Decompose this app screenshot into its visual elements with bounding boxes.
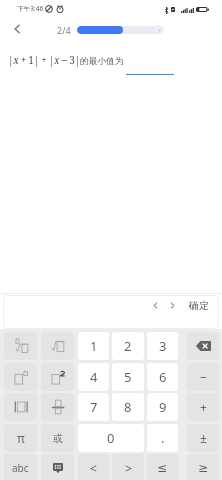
button[interactable] bbox=[41, 393, 74, 421]
button[interactable]: + bbox=[187, 393, 219, 421]
button[interactable]: − bbox=[187, 363, 219, 391]
button[interactable]: 0 bbox=[78, 424, 144, 452]
staticText: 3 bbox=[159, 337, 167, 355]
button[interactable]: Back bbox=[5, 17, 29, 41]
staticText: − bbox=[200, 369, 207, 385]
button[interactable] bbox=[41, 332, 74, 360]
staticText: 或 bbox=[53, 432, 63, 445]
staticText: 7 bbox=[90, 398, 98, 416]
button[interactable]: < bbox=[78, 454, 109, 480]
button[interactable] bbox=[4, 393, 37, 421]
staticText: 2 bbox=[124, 337, 132, 355]
staticText: 下午3:46 bbox=[17, 4, 44, 13]
staticText: . bbox=[161, 429, 165, 447]
button[interactable] bbox=[187, 332, 219, 360]
button[interactable]: 7 bbox=[78, 393, 109, 421]
staticText: 1 bbox=[90, 337, 98, 355]
button[interactable]: ± bbox=[187, 424, 219, 452]
staticText: 5 bbox=[124, 368, 132, 386]
button[interactable]: 或 bbox=[41, 424, 74, 452]
staticText: 4 bbox=[90, 368, 98, 386]
button[interactable]: 6 bbox=[147, 363, 178, 391]
staticText: 9 bbox=[159, 398, 167, 416]
staticText: + bbox=[200, 399, 207, 415]
staticText: abc bbox=[12, 461, 29, 475]
staticText: 6 bbox=[159, 368, 167, 386]
button[interactable]: 9 bbox=[147, 393, 178, 421]
button[interactable]: ≤ bbox=[147, 454, 178, 480]
button[interactable]: 8 bbox=[112, 393, 144, 421]
button[interactable]: abc bbox=[4, 454, 37, 480]
button[interactable]: 1 bbox=[78, 332, 109, 360]
button[interactable]: 确定 bbox=[183, 295, 215, 315]
staticText: 8 bbox=[124, 398, 132, 416]
button[interactable]: Next bbox=[162, 295, 182, 315]
button[interactable]: 5 bbox=[112, 363, 144, 391]
button[interactable] bbox=[4, 363, 37, 391]
staticText: < bbox=[90, 460, 97, 476]
staticText: |x + 1| + |x − 3| bbox=[8, 53, 80, 67]
staticText: 的最小值为 bbox=[80, 56, 124, 67]
staticText: 0 bbox=[107, 429, 115, 447]
staticText: 2/4 bbox=[57, 24, 71, 36]
staticText: ± bbox=[200, 430, 207, 446]
staticText: π bbox=[17, 430, 25, 446]
staticText: ≤ bbox=[157, 461, 168, 475]
staticText: ≥ bbox=[198, 461, 209, 475]
button[interactable]: . bbox=[147, 424, 178, 452]
button[interactable] bbox=[4, 332, 37, 360]
button[interactable]: 3 bbox=[147, 332, 178, 360]
button[interactable]: ≥ bbox=[187, 454, 219, 480]
button[interactable] bbox=[41, 363, 74, 391]
button[interactable]: Previous bbox=[145, 295, 165, 315]
button[interactable]: 4 bbox=[78, 363, 109, 391]
button[interactable]: 2 bbox=[112, 332, 144, 360]
button[interactable]: π bbox=[4, 424, 37, 452]
button[interactable]: > bbox=[112, 454, 144, 480]
staticText: 确定 bbox=[189, 299, 209, 312]
button[interactable]: Expand bbox=[154, 25, 164, 35]
button[interactable] bbox=[41, 454, 74, 480]
staticText: > bbox=[125, 460, 132, 476]
